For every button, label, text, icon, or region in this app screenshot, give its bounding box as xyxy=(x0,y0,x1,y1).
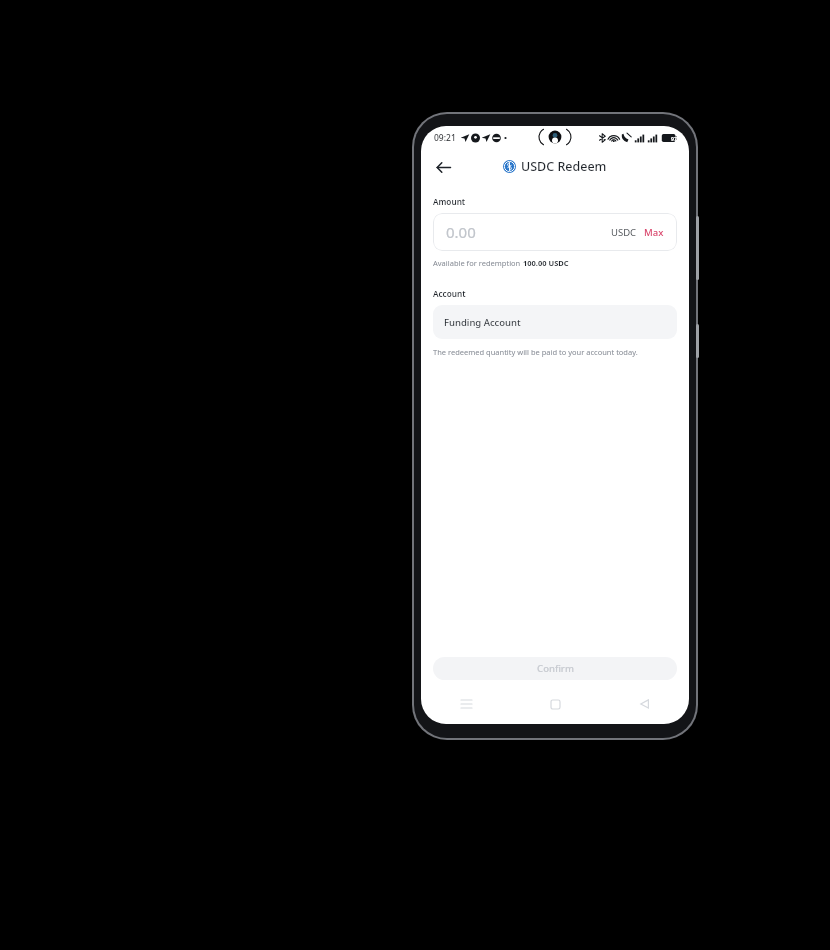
staticText: The redeemed quantity will be paid to yo… xyxy=(433,347,638,357)
staticText: 0.00 xyxy=(446,222,611,242)
staticText: USDC xyxy=(611,226,637,239)
staticText: USDC Redeem xyxy=(521,158,607,175)
staticText: Account xyxy=(433,288,466,299)
button[interactable]: Max xyxy=(644,226,664,239)
staticText: Amount xyxy=(433,196,466,207)
staticText: Confirm xyxy=(537,662,574,675)
staticText: Max xyxy=(644,226,664,239)
button[interactable]: Confirm xyxy=(433,657,677,680)
button[interactable]: Recents xyxy=(421,693,511,715)
staticText: 100.00 USDC xyxy=(523,258,569,268)
staticText: Available for redemption xyxy=(433,258,523,268)
staticText: Funding Account xyxy=(444,316,521,329)
staticText: 09:21 xyxy=(434,132,456,144)
button[interactable]: Back xyxy=(427,151,459,183)
staticText: 97 xyxy=(671,135,677,142)
button[interactable]: Back xyxy=(600,693,689,715)
button[interactable]: Funding Account xyxy=(433,305,677,339)
button[interactable]: Home xyxy=(511,693,600,715)
button[interactable]: 0.00 xyxy=(433,213,677,251)
